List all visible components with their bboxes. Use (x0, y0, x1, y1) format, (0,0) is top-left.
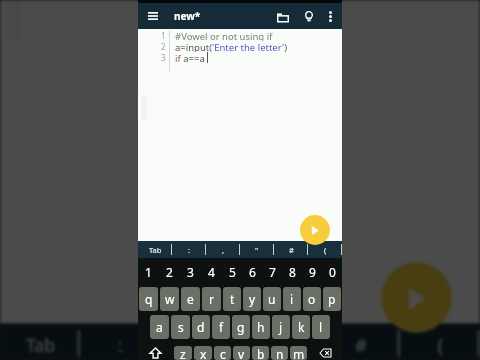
button[interactable]: x (194, 346, 212, 360)
staticText: l (319, 319, 323, 335)
staticText: b (257, 346, 265, 360)
staticText: u (268, 291, 276, 307)
button[interactable]: p (323, 287, 341, 311)
staticText: n (276, 346, 284, 360)
button[interactable]: Open file (270, 3, 296, 29)
staticText: 8 (289, 264, 296, 280)
button[interactable]: Backspace (308, 346, 342, 360)
button[interactable]: r (202, 287, 221, 311)
staticText: ( (324, 245, 327, 255)
button[interactable]: o (303, 287, 321, 311)
staticText: if a==a (175, 52, 205, 63)
button[interactable]: Tab (138, 241, 172, 258)
button[interactable]: Navigation menu (138, 3, 168, 29)
staticText: s (178, 319, 184, 335)
button[interactable]: b (252, 346, 269, 360)
staticText: 3 (187, 264, 194, 280)
button[interactable]: 9 (302, 258, 322, 286)
button[interactable]: Hints (296, 3, 321, 29)
staticText: 2 (166, 264, 173, 280)
button[interactable]: v (233, 346, 250, 360)
staticText: 6 (249, 264, 256, 280)
button[interactable]: y (243, 287, 261, 311)
staticText: w (165, 291, 175, 307)
staticText: 3 (161, 52, 166, 63)
button[interactable]: Shift (138, 346, 173, 360)
button[interactable]: , (206, 241, 240, 258)
button[interactable]: g (232, 315, 250, 339)
staticText: 1 (161, 30, 166, 41)
button[interactable]: f (212, 315, 230, 339)
button[interactable]: ( (400, 323, 480, 360)
button[interactable]: d (192, 315, 210, 339)
button[interactable]: 6 (242, 258, 262, 286)
staticText: " (275, 333, 285, 356)
staticText: c (220, 346, 226, 360)
button[interactable]: u (263, 287, 281, 311)
button[interactable]: 5 (222, 258, 242, 286)
staticText: # (355, 333, 367, 356)
staticText: Tab (149, 245, 162, 255)
button[interactable]: # (274, 241, 308, 258)
button[interactable]: # (320, 323, 400, 360)
button[interactable]: c (214, 346, 231, 360)
button[interactable]: 7 (262, 258, 282, 286)
button[interactable]: : (172, 241, 206, 258)
button[interactable]: k (292, 315, 310, 339)
button[interactable]: : (80, 323, 160, 360)
staticText: , (198, 333, 205, 356)
button[interactable]: m (290, 346, 307, 360)
staticText: 7 (269, 264, 276, 280)
staticText: a (156, 319, 163, 335)
button[interactable]: w (160, 287, 179, 311)
staticText: o (308, 291, 316, 307)
button[interactable]: j (272, 315, 290, 339)
button[interactable]: 3 (180, 258, 201, 286)
button[interactable]: h (252, 315, 270, 339)
staticText: a=input('Enter the letter') (175, 41, 287, 52)
staticText: x (200, 346, 207, 360)
button[interactable]: 4 (201, 258, 222, 286)
staticText: 9 (309, 264, 316, 280)
button[interactable]: " (240, 323, 320, 360)
button[interactable]: s (171, 315, 190, 339)
staticText: 1 (145, 264, 152, 280)
button[interactable]: a (150, 315, 169, 339)
button[interactable]: 2 (159, 258, 180, 286)
button[interactable]: " (240, 241, 274, 258)
button[interactable]: l (312, 315, 330, 339)
staticText: h (257, 319, 265, 335)
staticText: ( (438, 333, 445, 356)
button[interactable]: Tab (0, 323, 80, 360)
button[interactable]: 1 (138, 258, 159, 286)
staticText: 4 (208, 264, 215, 280)
staticText: 5 (229, 264, 236, 280)
staticText: #Vowel or not using if (175, 30, 273, 41)
staticText: i (290, 291, 294, 307)
button[interactable]: Run (300, 215, 330, 245)
button[interactable]: More options (321, 3, 340, 29)
button[interactable]: q (139, 287, 158, 311)
staticText: k (298, 319, 305, 335)
button[interactable]: , (160, 323, 240, 360)
staticText: Tab (26, 333, 56, 356)
staticText: 2 (161, 41, 166, 52)
button[interactable]: ( (308, 241, 342, 258)
button[interactable]: e (181, 287, 200, 311)
staticText: z (180, 346, 186, 360)
staticText: p (328, 291, 336, 307)
staticText: f (219, 319, 224, 335)
button[interactable]: t (223, 287, 241, 311)
staticText: j (279, 319, 283, 335)
staticText: e (187, 291, 194, 307)
staticText: q (145, 291, 153, 307)
button[interactable]: Run (381, 262, 452, 333)
staticText: new* (174, 9, 201, 23)
button[interactable]: z (174, 346, 192, 360)
button[interactable]: 8 (282, 258, 302, 286)
button[interactable]: n (271, 346, 288, 360)
button[interactable]: i (283, 287, 301, 311)
staticText: , (222, 245, 225, 255)
staticText: # (289, 245, 294, 255)
button[interactable]: 0 (322, 258, 342, 286)
